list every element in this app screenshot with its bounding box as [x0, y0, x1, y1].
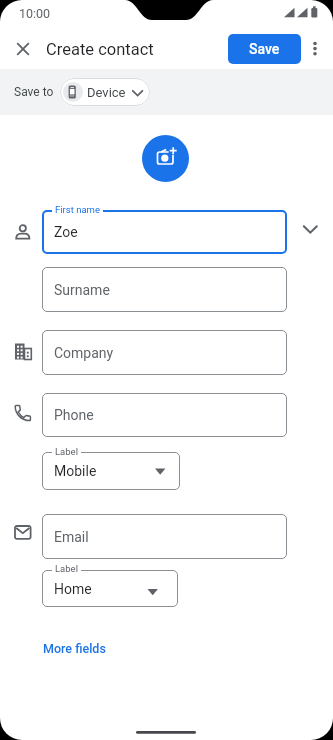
button[interactable]	[42, 570, 178, 607]
button[interactable]	[60, 78, 150, 106]
staticText: Mobile	[54, 463, 97, 479]
button[interactable]	[42, 267, 287, 312]
button[interactable]	[42, 393, 287, 437]
button[interactable]	[142, 135, 189, 182]
button[interactable]: Save	[228, 34, 301, 64]
button[interactable]	[10, 36, 36, 62]
staticText: Phone	[54, 407, 94, 423]
staticText: Save	[249, 41, 280, 57]
staticText: Save to	[14, 85, 54, 99]
staticText: Device	[87, 85, 126, 100]
button[interactable]	[42, 330, 287, 375]
staticText: Home	[54, 581, 92, 597]
button[interactable]	[304, 36, 328, 60]
staticText: More fields	[43, 641, 106, 656]
button[interactable]: More fields	[43, 638, 123, 658]
staticText: Zoe	[54, 224, 78, 240]
staticText: 10:00	[19, 6, 51, 20]
staticText: Label	[55, 563, 78, 574]
button[interactable]	[42, 514, 287, 559]
staticText: Company	[54, 345, 114, 361]
staticText: Create contact	[46, 40, 154, 59]
button[interactable]	[42, 452, 180, 490]
staticText: Surname	[54, 282, 110, 298]
staticText: Email	[54, 529, 89, 545]
staticText: Label	[55, 446, 78, 457]
button[interactable]	[42, 210, 287, 254]
staticText: First name	[55, 204, 100, 215]
